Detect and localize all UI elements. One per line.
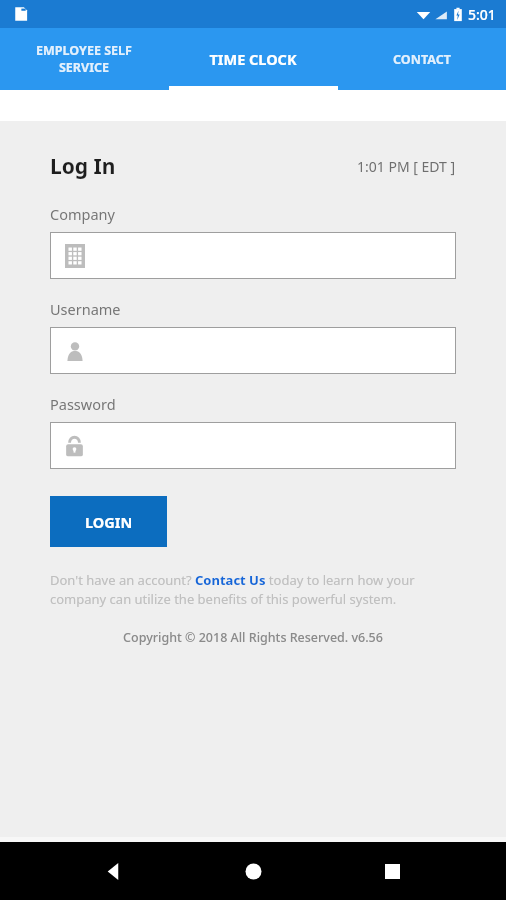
staticText: 5:01: [468, 5, 496, 24]
button[interactable]: Back: [89, 846, 139, 896]
button[interactable]: LOGIN: [50, 496, 167, 547]
button[interactable]: [50, 232, 456, 279]
button[interactable]: TIME CLOCK: [168, 28, 337, 90]
staticText: TIME CLOCK: [209, 49, 297, 69]
button[interactable]: Recent apps: [367, 846, 417, 896]
staticText: CONTACT: [393, 51, 451, 68]
button[interactable]: [50, 422, 456, 469]
staticText: Company: [50, 204, 115, 224]
staticText: Copyright © 2018 All Rights Reserved. v6…: [50, 629, 456, 646]
button[interactable]: Home: [228, 846, 278, 896]
button[interactable]: CONTACT: [337, 28, 506, 90]
staticText: Password: [50, 394, 116, 414]
button[interactable]: [50, 327, 456, 374]
button[interactable]: EMPLOYEE SELF SERVICE: [0, 28, 168, 90]
staticText: Username: [50, 299, 121, 319]
staticText: Log In: [50, 152, 116, 181]
staticText: LOGIN: [85, 512, 133, 532]
staticText: EMPLOYEE SELF SERVICE: [36, 42, 132, 76]
staticText: 1:01 PM [ EDT ]: [357, 157, 456, 176]
staticText: Don't have an account? Contact Us today …: [50, 571, 456, 608]
